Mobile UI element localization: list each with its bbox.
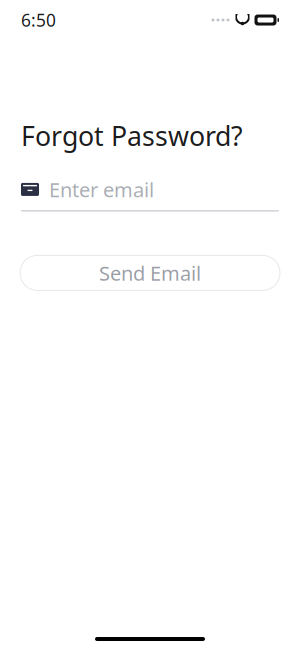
staticText: 6:50 bbox=[21, 8, 56, 31]
button[interactable]: Send Email bbox=[20, 255, 280, 290]
staticText: Enter email bbox=[49, 176, 154, 203]
staticText: Send Email bbox=[99, 260, 201, 286]
staticText: Forgot Password? bbox=[21, 118, 243, 153]
